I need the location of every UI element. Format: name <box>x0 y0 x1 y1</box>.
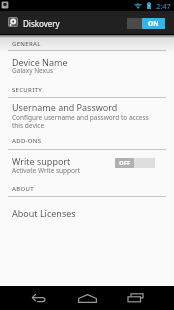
button[interactable] <box>0 101 174 129</box>
button[interactable]: Service on/off <box>127 18 165 29</box>
staticText: ADD-ONS <box>12 137 42 145</box>
staticText: Device Name <box>12 56 68 68</box>
button[interactable]: Recent apps <box>111 286 159 310</box>
button[interactable] <box>0 154 174 176</box>
staticText: Galaxy Nexus <box>12 66 54 75</box>
button[interactable] <box>0 56 174 73</box>
staticText: Diskovery <box>23 18 60 29</box>
button[interactable]: Home <box>63 286 111 310</box>
staticText: ON <box>148 19 159 28</box>
staticText: About Licenses <box>12 207 76 219</box>
button[interactable] <box>0 202 174 219</box>
staticText: OFF <box>119 159 131 167</box>
staticText: Configure username and password to acces… <box>12 113 157 130</box>
staticText: GENERAL <box>12 40 41 48</box>
staticText: SECURITY <box>12 86 43 94</box>
staticText: Write support <box>12 155 71 167</box>
staticText: Username and Password <box>12 101 118 113</box>
button[interactable]: Back <box>15 286 63 310</box>
staticText: Activate Write support <box>12 166 81 175</box>
button[interactable]: Write support on/off <box>115 158 155 168</box>
staticText: ABOUT <box>12 185 34 193</box>
staticText: 2:47 <box>156 1 171 11</box>
